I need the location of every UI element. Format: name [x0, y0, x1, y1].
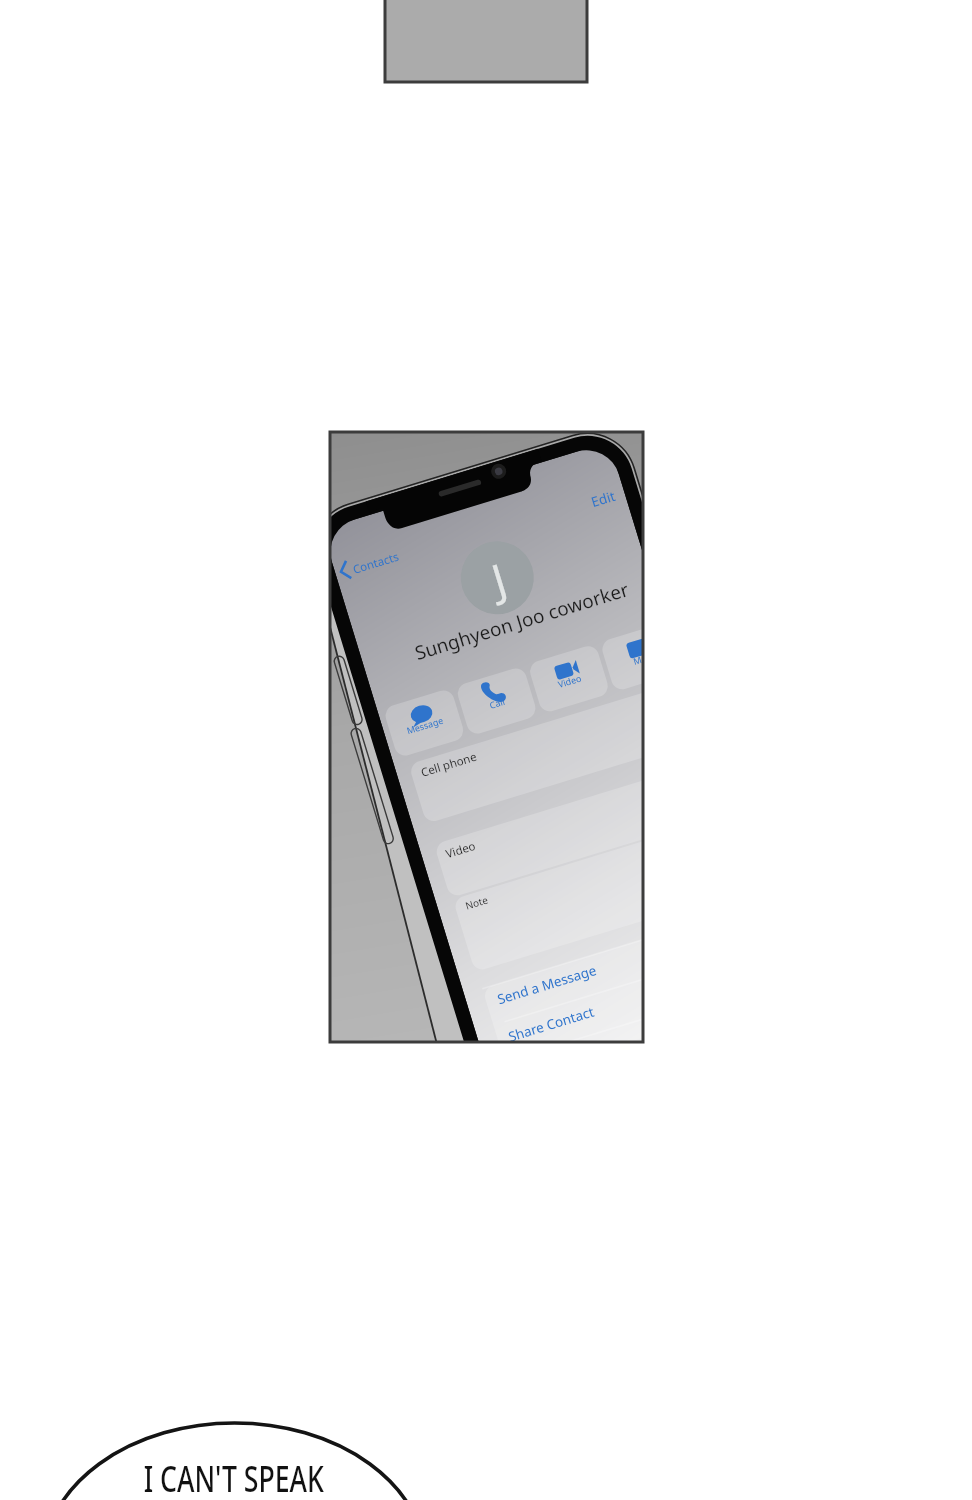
button[interactable]: Call — [451, 667, 523, 725]
button[interactable]: Message — [379, 686, 451, 744]
button[interactable]: Cell phone — [395, 745, 643, 817]
button[interactable]: Edit contact — [586, 484, 626, 516]
button[interactable]: Share Contact — [478, 1008, 643, 1042]
button[interactable]: Send a Message — [463, 966, 643, 1010]
button[interactable]: Note — [437, 884, 643, 960]
button[interactable]: Mail — [595, 628, 643, 686]
button[interactable]: Back to Contacts — [334, 548, 404, 588]
button[interactable]: Video — [523, 647, 595, 705]
button[interactable]: Video number — [418, 830, 643, 892]
